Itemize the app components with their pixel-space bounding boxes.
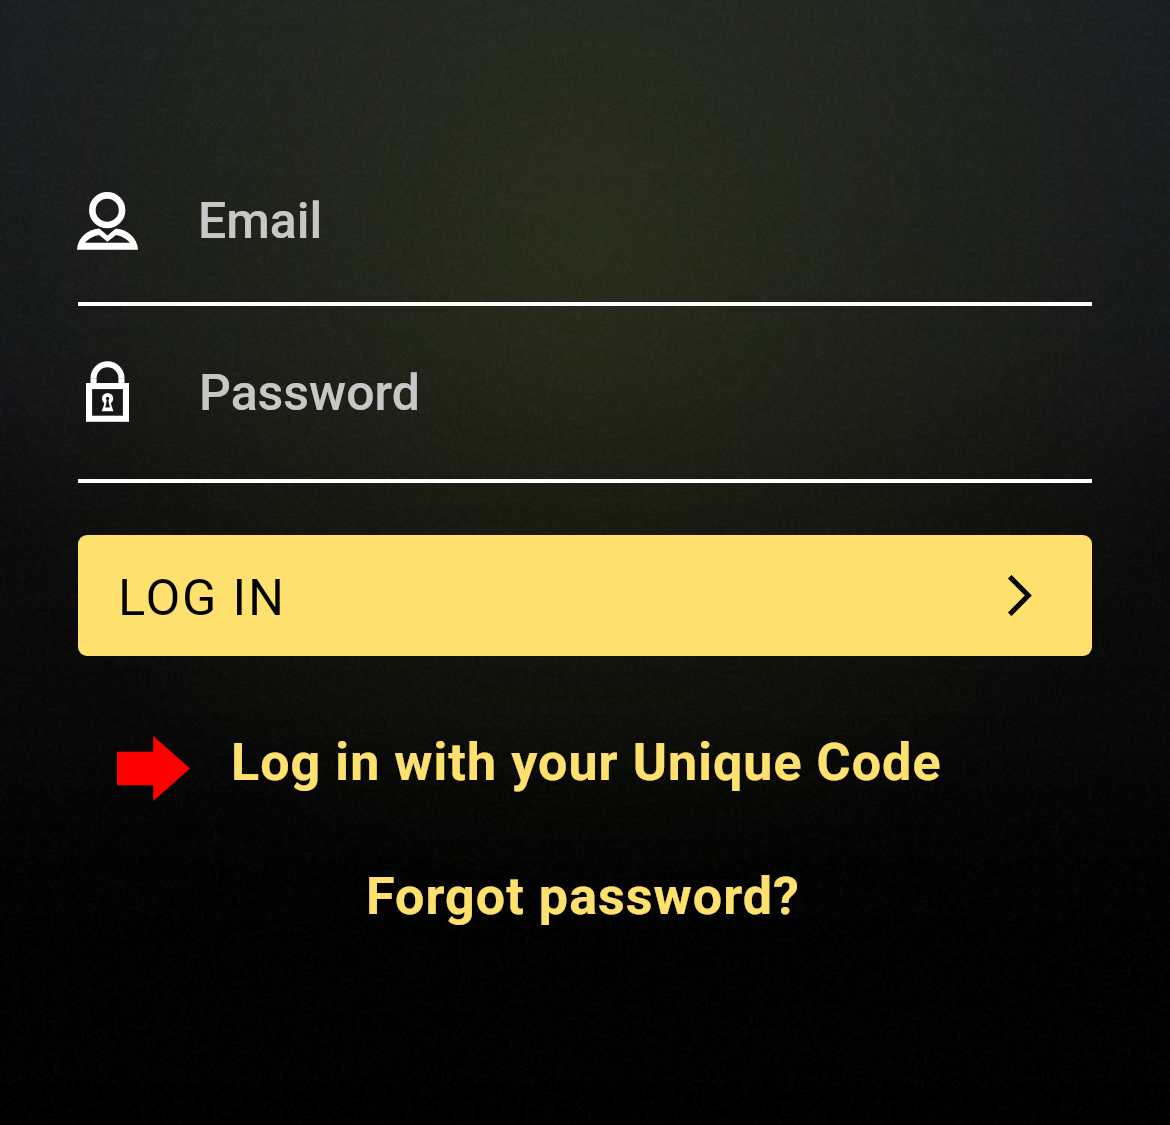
staticText: Password xyxy=(199,364,420,423)
staticText: Forgot password? xyxy=(366,866,801,927)
other: Password xyxy=(86,361,129,422)
staticText: LOG IN xyxy=(118,568,286,627)
button[interactable]: LOG IN xyxy=(78,535,1092,656)
other: Account xyxy=(77,192,138,250)
staticText: Email xyxy=(198,192,323,251)
button[interactable]: Forgot password? xyxy=(344,860,824,944)
button[interactable]: Log in with your Unique Code xyxy=(100,726,956,810)
button[interactable]: Password xyxy=(78,357,1092,482)
staticText: Log in with your Unique Code xyxy=(231,732,942,793)
button[interactable]: Account xyxy=(78,185,1092,306)
other: Log in xyxy=(1009,576,1031,615)
